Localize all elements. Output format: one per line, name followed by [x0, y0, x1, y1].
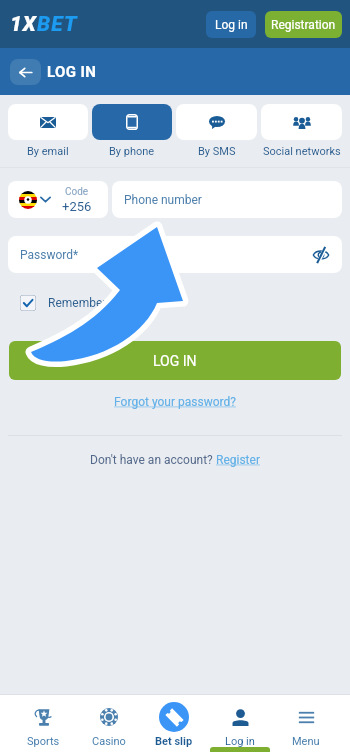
staticText: By email	[27, 145, 69, 158]
button[interactable]: Phone number	[112, 181, 342, 218]
button[interactable]: Password*	[8, 236, 342, 273]
button[interactable]: Bet slip	[141, 695, 207, 752]
staticText: Remember me	[48, 296, 127, 310]
button[interactable]: Sports	[11, 695, 76, 752]
button[interactable]: Show password	[307, 241, 335, 269]
button[interactable]: Menu	[273, 695, 339, 752]
staticText: +256	[62, 199, 92, 214]
button[interactable]: Code	[8, 181, 108, 218]
staticText: Bet slip	[155, 735, 193, 748]
staticText: By phone	[109, 145, 155, 158]
staticText: Phone number	[124, 193, 202, 207]
staticText: LOG IN	[47, 63, 97, 81]
button[interactable]: Register	[216, 453, 260, 467]
staticText: Don't have an account?	[90, 453, 216, 467]
staticText: Log in	[225, 735, 255, 748]
staticText: Sports	[27, 735, 60, 748]
button[interactable]: Log in	[206, 11, 256, 38]
staticText: Code	[65, 186, 89, 198]
button[interactable]: Back	[10, 59, 41, 85]
button[interactable]: Log in	[207, 695, 273, 752]
button[interactable]: By email	[8, 104, 88, 158]
staticText: By SMS	[198, 145, 236, 158]
button[interactable]: Social networks	[261, 104, 342, 158]
staticText: Registration	[271, 18, 336, 32]
button[interactable]: Remember me	[20, 295, 127, 311]
staticText: BET	[37, 12, 78, 37]
staticText: Log in	[215, 18, 248, 32]
button[interactable]: By phone	[92, 104, 172, 158]
staticText: LOG IN	[153, 353, 197, 369]
staticText: 1X	[10, 12, 37, 37]
button[interactable]: Forgot your password?	[0, 395, 350, 409]
button[interactable]: Casino	[76, 695, 141, 752]
button[interactable]: LOG IN	[9, 341, 341, 380]
button[interactable]: Registration	[265, 11, 342, 38]
staticText: Casino	[92, 735, 126, 748]
staticText: Social networks	[263, 145, 341, 158]
staticText: Menu	[292, 735, 320, 748]
button[interactable]: By SMS	[176, 104, 257, 158]
staticText: Password*	[20, 248, 79, 262]
